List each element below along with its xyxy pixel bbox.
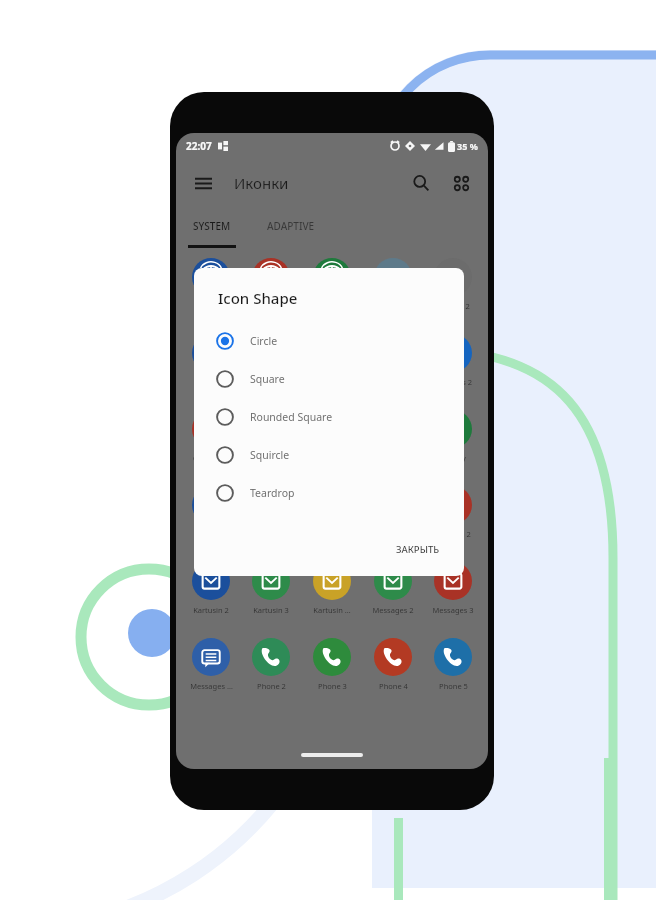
button[interactable]: Browser 3	[303, 254, 361, 311]
button[interactable]: Kartusin 2	[182, 558, 240, 615]
button[interactable]: Phone 3	[303, 634, 361, 691]
staticText: Camera 3	[194, 377, 228, 387]
staticText: Kartusin 2	[193, 605, 229, 615]
button[interactable]: Kartusin …	[303, 558, 361, 615]
staticText: 22:07	[186, 139, 212, 153]
button[interactable]: Rounded Square	[216, 398, 464, 436]
button[interactable]: ADAPTIVE	[248, 207, 334, 245]
button[interactable]: Camera 4	[242, 330, 300, 387]
staticText: Messages 3	[432, 605, 474, 615]
button[interactable]: Messages …	[182, 634, 240, 691]
button[interactable]: Squircle	[216, 436, 464, 474]
button[interactable]: Files 4	[182, 482, 240, 539]
staticText: Messages 2	[372, 605, 414, 615]
button[interactable]: Contacts 3	[182, 406, 240, 463]
button[interactable]: Kartusin 3	[242, 558, 300, 615]
staticText: ADAPTIVE	[267, 219, 315, 233]
button[interactable]: Messages 3	[424, 558, 482, 615]
button[interactable]: Grid view	[446, 168, 476, 198]
staticText: Browser	[196, 301, 226, 311]
button[interactable]: Search	[406, 168, 436, 198]
button[interactable]: Messages 2	[364, 558, 422, 615]
button[interactable]: Teardrop	[216, 474, 464, 512]
button[interactable]: Phone 4	[364, 634, 422, 691]
button[interactable]: Files	[242, 406, 300, 463]
button[interactable]: Camera 2	[424, 254, 482, 311]
staticText: Gallery	[441, 453, 466, 463]
staticText: Kartusin 2	[435, 529, 471, 539]
button[interactable]: Browser 2	[242, 254, 300, 311]
staticText: Contacts 3	[193, 453, 230, 463]
staticText: Files	[263, 453, 279, 463]
staticText: ЗАКРЫТЬ	[396, 543, 440, 556]
button[interactable]: Square	[216, 360, 464, 398]
button[interactable]: Kartusin 2	[424, 482, 482, 539]
button[interactable]: Browser	[182, 254, 240, 311]
button[interactable]: Gallery	[424, 406, 482, 463]
staticText: Squircle	[250, 448, 290, 462]
button[interactable]: Menu	[188, 168, 218, 198]
staticText: Contacts 2	[435, 377, 472, 387]
button[interactable]: ЗАКРЫТЬ	[390, 539, 446, 560]
staticText: Phone 4	[379, 681, 408, 691]
staticText: Icon Shape	[218, 288, 298, 308]
button[interactable]: Circle	[216, 322, 464, 360]
staticText: Browser 2	[253, 301, 289, 311]
staticText: Иконки	[234, 173, 289, 193]
button[interactable]: Gmail	[242, 482, 300, 539]
staticText: Square	[250, 372, 285, 386]
staticText: SYSTEM	[193, 219, 231, 233]
staticText: Phone 2	[257, 681, 286, 691]
button[interactable]: Camera	[364, 254, 422, 311]
staticText: Kartusin …	[313, 605, 351, 615]
button[interactable]: SYSTEM	[176, 207, 248, 245]
staticText: Teardrop	[250, 486, 295, 500]
button[interactable]: Phone 2	[242, 634, 300, 691]
button[interactable]: Contacts 2	[424, 330, 482, 387]
staticText: Rounded Square	[250, 410, 333, 424]
staticText: Phone 5	[439, 681, 468, 691]
staticText: Camera 4	[254, 377, 288, 387]
staticText: 35 %	[457, 140, 478, 152]
staticText: Circle	[250, 334, 278, 348]
staticText: Camera 2	[436, 301, 470, 311]
staticText: Phone 3	[318, 681, 347, 691]
staticText: Kartusin 3	[253, 605, 289, 615]
button[interactable]: Files 2	[303, 406, 361, 463]
button[interactable]: Phone 5	[424, 634, 482, 691]
button[interactable]: Camera 3	[182, 330, 240, 387]
staticText: Messages …	[190, 681, 233, 691]
